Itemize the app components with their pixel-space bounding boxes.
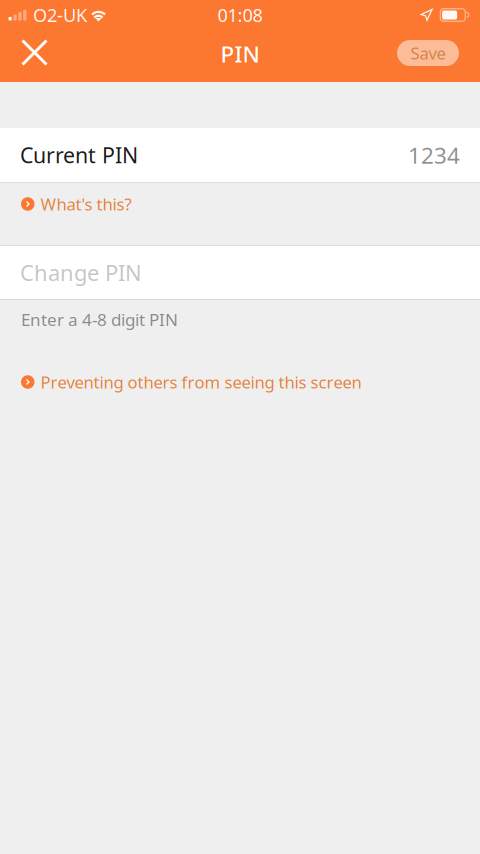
button[interactable]: Current PIN xyxy=(0,128,480,182)
staticText: Current PIN xyxy=(20,141,138,169)
staticText: O2-UK xyxy=(33,3,87,27)
staticText: 01:08 xyxy=(217,3,262,27)
staticText: 1234 xyxy=(408,140,460,170)
staticText: Save xyxy=(410,42,445,64)
staticText: Enter a 4-8 digit PIN xyxy=(21,308,178,331)
button[interactable]: What's this? xyxy=(0,183,480,226)
button[interactable]: Close xyxy=(0,30,62,82)
staticText: Preventing others from seeing this scree… xyxy=(40,371,361,393)
button[interactable]: Preventing others from seeing this scree… xyxy=(0,360,480,404)
button[interactable]: Change PIN xyxy=(0,246,480,299)
staticText: Change PIN xyxy=(20,258,142,287)
staticText: PIN xyxy=(220,39,259,69)
button[interactable]: Save xyxy=(397,30,480,82)
staticText: What's this? xyxy=(40,193,131,215)
